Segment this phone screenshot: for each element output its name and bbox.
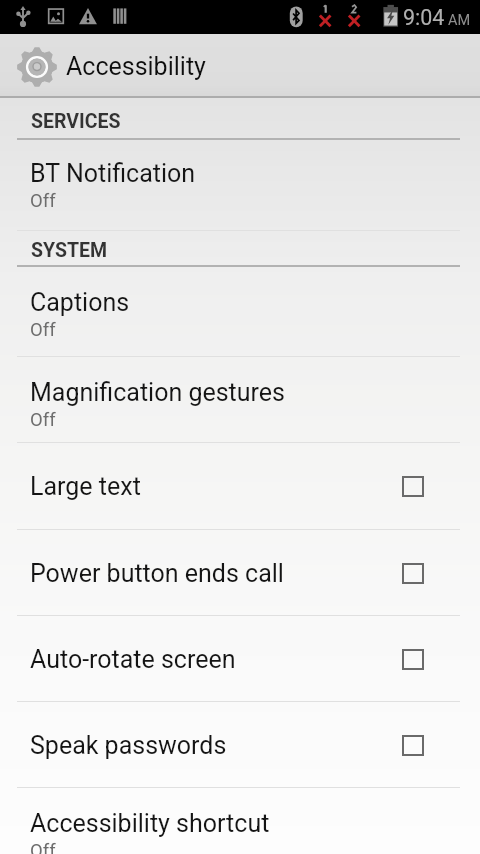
staticText: Off <box>30 319 56 341</box>
button[interactable]: Magnification gestures <box>0 357 480 443</box>
staticText: Off <box>30 409 56 431</box>
staticText: BT Notification <box>30 159 196 188</box>
staticText: Power button ends call <box>30 559 402 588</box>
button[interactable]: Auto-rotate screen <box>0 616 480 702</box>
staticText: Magnification gestures <box>30 378 285 407</box>
staticText: Off <box>30 840 56 854</box>
staticText: Off <box>30 190 56 212</box>
staticText: Auto-rotate screen <box>30 645 402 674</box>
staticText: SERVICES <box>31 110 121 133</box>
staticText: Large text <box>30 472 402 501</box>
button[interactable]: Accessibility shortcut <box>0 788 480 854</box>
staticText: Speak passwords <box>30 731 402 760</box>
button[interactable]: Power button ends call <box>0 530 480 616</box>
button[interactable]: BT Notification <box>0 140 480 231</box>
staticText: AM <box>448 12 471 29</box>
staticText: SYSTEM <box>31 239 108 262</box>
staticText: Accessibility shortcut <box>30 809 270 838</box>
button[interactable]: Speak passwords <box>0 702 480 788</box>
button[interactable]: Captions <box>0 267 480 357</box>
staticText: Accessibility <box>66 52 206 81</box>
staticText: 9:04 <box>403 5 445 30</box>
other: Settings <box>16 45 58 87</box>
staticText: Captions <box>30 288 130 317</box>
button[interactable]: Large text <box>0 443 480 530</box>
